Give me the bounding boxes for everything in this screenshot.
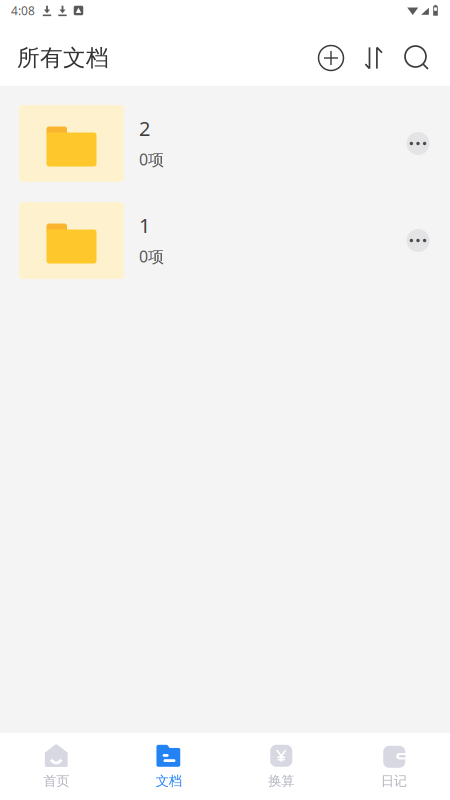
staticText: 日记: [381, 773, 407, 789]
button[interactable]: 首页: [0, 733, 112, 800]
button[interactable]: 1: [0, 192, 450, 289]
staticText: 换算: [268, 773, 294, 789]
button[interactable]: More options: [396, 218, 440, 262]
button[interactable]: Sort: [353, 30, 395, 86]
button[interactable]: Search: [395, 30, 439, 86]
staticText: 文档: [156, 773, 182, 789]
button[interactable]: New folder: [309, 30, 353, 86]
button[interactable]: 2: [0, 95, 450, 192]
staticText: 1: [139, 212, 150, 239]
button[interactable]: More options: [396, 121, 440, 165]
button[interactable]: 换算: [225, 733, 337, 800]
button[interactable]: 文档: [112, 733, 225, 800]
staticText: 首页: [43, 773, 69, 789]
staticText: 4:08: [11, 2, 35, 18]
staticText: 所有文档: [17, 44, 109, 72]
staticText: 2: [139, 115, 150, 142]
staticText: 0项: [139, 246, 164, 267]
button[interactable]: 日记: [337, 733, 450, 800]
staticText: 0项: [139, 149, 164, 170]
